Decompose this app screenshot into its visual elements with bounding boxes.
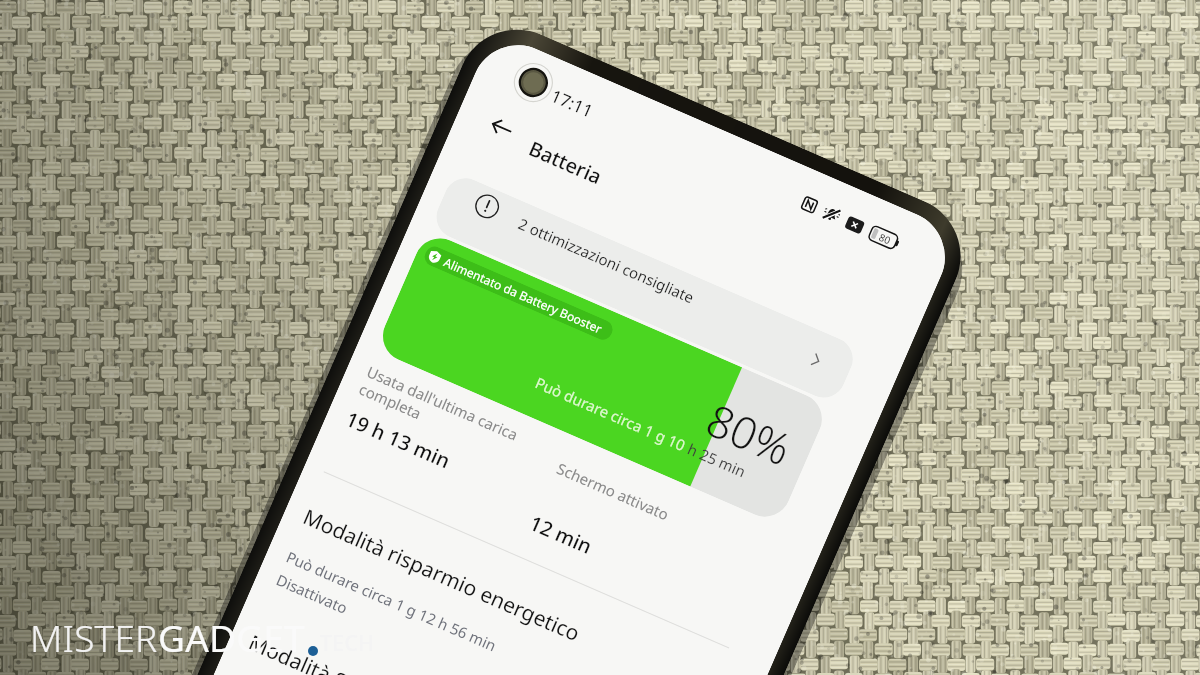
staticText: Modalità risparmio energetico (299, 502, 585, 648)
button[interactable]: 2 ottimizzazioni consigliate (430, 171, 860, 404)
staticText: 19 h 13 min (342, 405, 454, 474)
button[interactable]: Back (482, 108, 521, 147)
button[interactable]: Può durare circa 1 g 10 (375, 230, 830, 525)
button[interactable]: Modalità risparmio energetico (273, 502, 716, 675)
staticText: 17:11 (547, 84, 597, 122)
staticText: 80% (698, 389, 801, 478)
staticText: Schermo attivato (554, 458, 673, 525)
staticText: Può durare circa 1 g 10 (532, 372, 693, 457)
button[interactable]: Modalità Super risparmio energetico (229, 628, 661, 675)
staticText: Batteria (525, 135, 606, 190)
staticText: 2 ottimizzazioni consigliate (515, 213, 697, 307)
staticText: 12 min (526, 509, 596, 560)
staticText: GADGET (158, 612, 305, 662)
staticText: 80 (877, 230, 893, 248)
staticText: Può durare circa 2 g 4 h 10 min (229, 672, 437, 675)
staticText: h 25 min (685, 438, 749, 482)
staticText: Disattivato (273, 569, 351, 618)
staticText: Alimentato da Battery Booster (442, 254, 605, 337)
staticText: Può durare circa 1 g 12 h 56 min (283, 546, 499, 655)
staticText: MISTER (30, 612, 158, 662)
staticText: Modalità Super risparmio energetico (244, 628, 588, 675)
staticText: Usata dall'ultima carica completa (356, 361, 555, 477)
